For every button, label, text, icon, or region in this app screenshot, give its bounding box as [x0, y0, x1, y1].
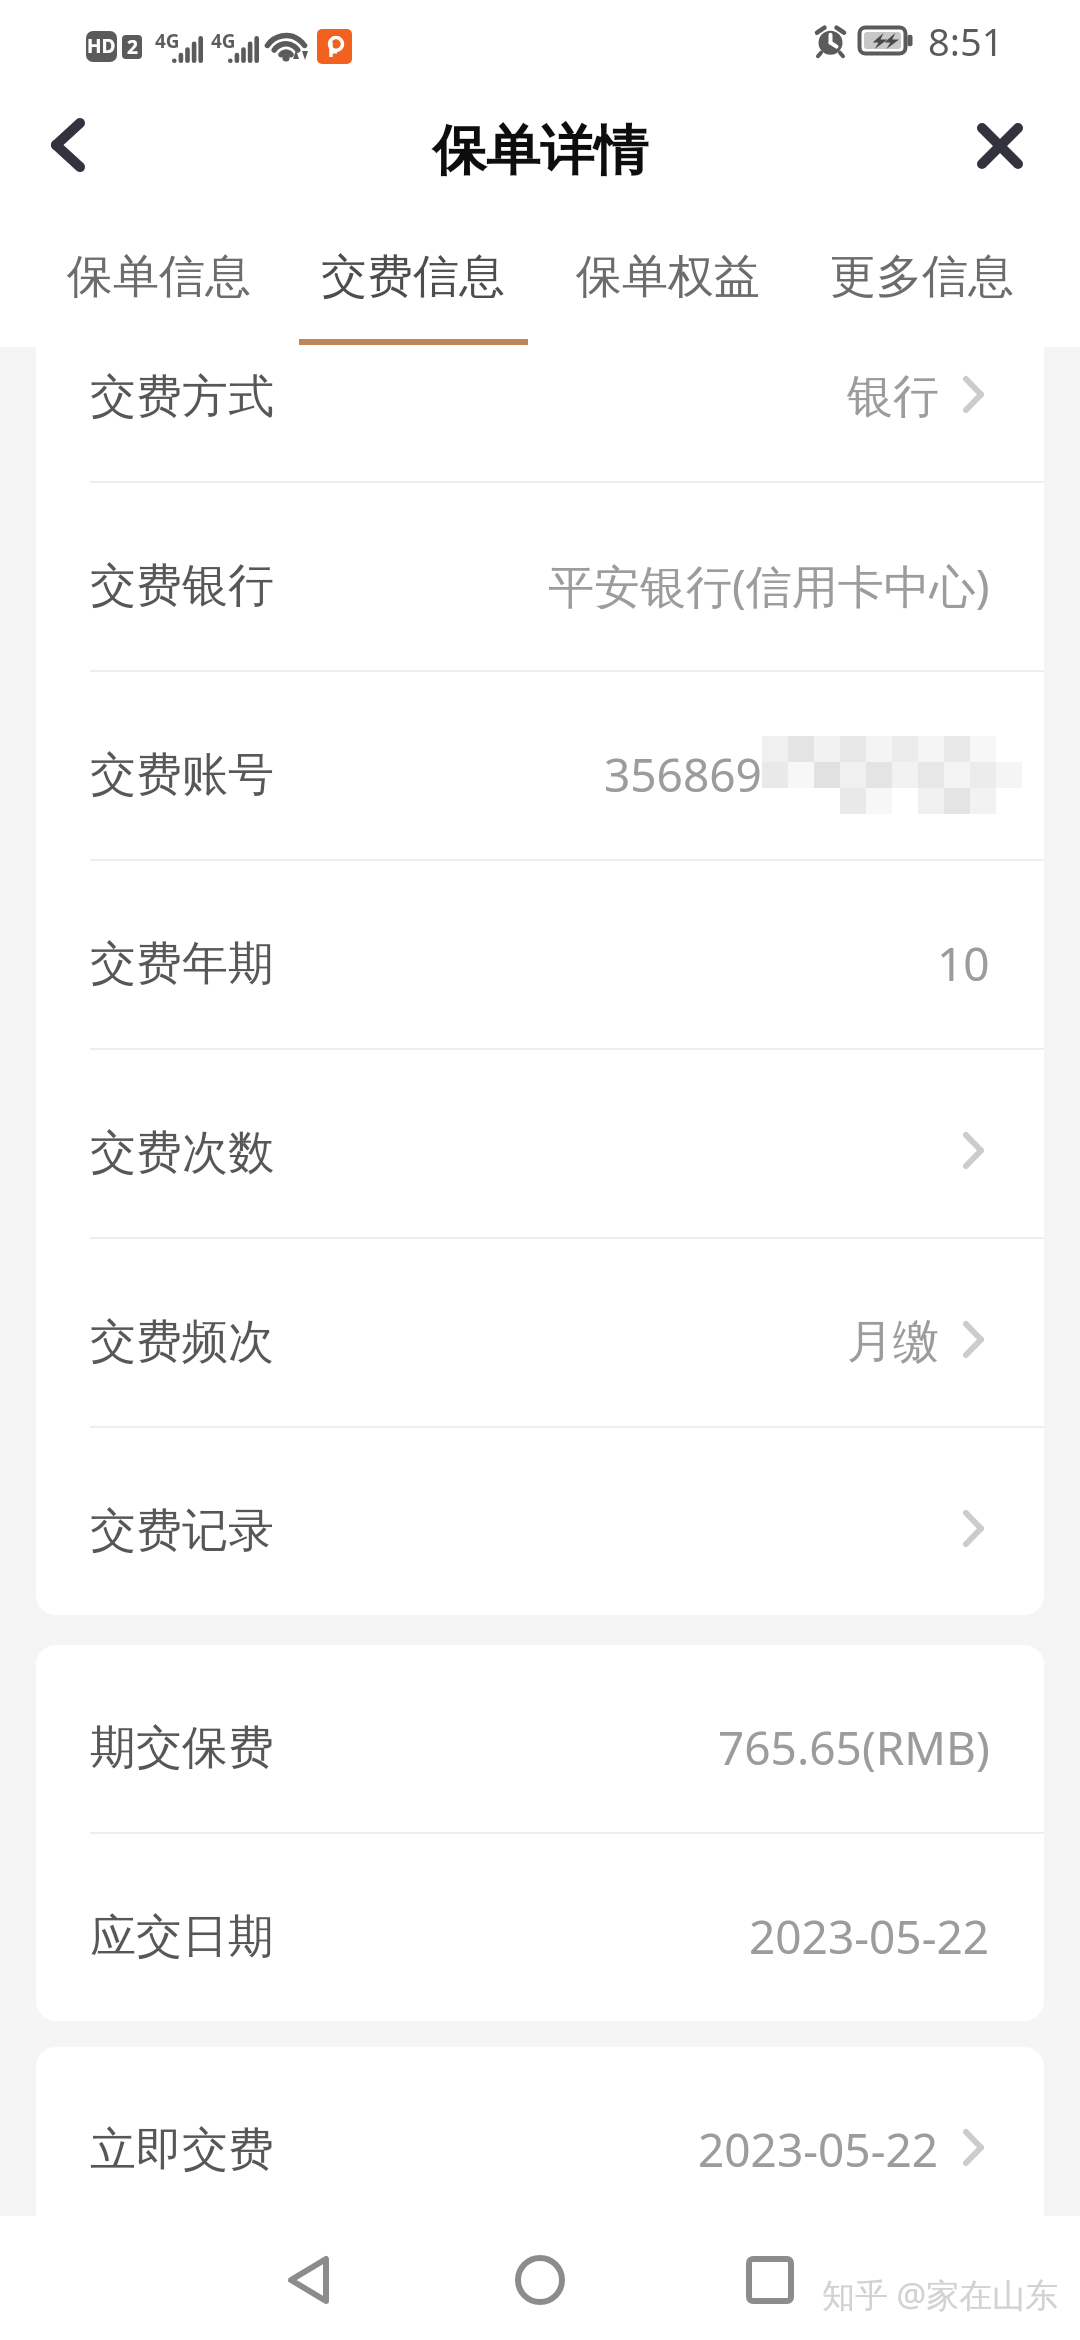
- staticText: 2023-05-22: [749, 1905, 990, 1968]
- staticText: 更多信息: [830, 248, 1014, 306]
- staticText: 765.65(RMB): [718, 1716, 990, 1779]
- button[interactable]: 保单信息: [32, 220, 286, 347]
- button[interactable]: 交费记录: [36, 1428, 1044, 1615]
- staticText: 立即交费: [90, 2121, 274, 2179]
- staticText: 保单权益: [576, 248, 760, 306]
- staticText: 356869: [604, 743, 762, 806]
- button[interactable]: 立即交费: [36, 2047, 1044, 2216]
- staticText: 交费频次: [90, 1313, 274, 1371]
- staticText: 4G: [155, 28, 180, 54]
- staticText: 2: [127, 35, 138, 58]
- button[interactable]: 交费次数: [36, 1050, 1044, 1237]
- staticText: 平安银行(信用卡中心): [548, 554, 990, 617]
- staticText: 交费账号: [90, 746, 274, 804]
- button[interactable]: Home: [460, 2218, 620, 2340]
- staticText: 应交日期: [90, 1908, 274, 1966]
- button[interactable]: 期交保费: [36, 1645, 1044, 1832]
- staticText: 交费次数: [90, 1124, 274, 1182]
- button[interactable]: Back: [8, 85, 128, 205]
- staticText: 8:51: [928, 15, 1004, 67]
- button[interactable]: 保单权益: [541, 220, 795, 347]
- staticText: 4G: [211, 28, 236, 54]
- staticText: 交费银行: [90, 557, 274, 615]
- button[interactable]: 交费频次: [36, 1239, 1044, 1426]
- button[interactable]: 应交日期: [36, 1834, 1044, 2021]
- staticText: 交费年期: [90, 935, 274, 993]
- button[interactable]: Recent apps: [690, 2218, 850, 2340]
- staticText: HD: [87, 33, 116, 59]
- button[interactable]: Close: [940, 86, 1060, 206]
- staticText: 2023-05-22: [698, 2118, 939, 2181]
- staticText: 交费方式: [90, 368, 274, 426]
- staticText: 月缴: [847, 1313, 939, 1371]
- button[interactable]: 更多信息: [795, 220, 1049, 347]
- button[interactable]: 交费银行: [36, 483, 1044, 670]
- button[interactable]: 交费方式: [36, 347, 1044, 481]
- button[interactable]: Back: [232, 2218, 392, 2340]
- button[interactable]: 交费账号: [36, 672, 1044, 859]
- staticText: 交费信息: [321, 248, 505, 306]
- staticText: 期交保费: [90, 1719, 274, 1777]
- button[interactable]: 交费年期: [36, 861, 1044, 1048]
- staticText: 保单详情: [432, 117, 648, 185]
- staticText: 交费记录: [90, 1502, 274, 1560]
- staticText: 知乎 @家在山东: [822, 2272, 1059, 2317]
- staticText: 保单信息: [67, 248, 251, 306]
- button[interactable]: 交费信息: [286, 220, 540, 347]
- staticText: 银行: [847, 368, 939, 426]
- staticText: 10: [937, 932, 990, 995]
